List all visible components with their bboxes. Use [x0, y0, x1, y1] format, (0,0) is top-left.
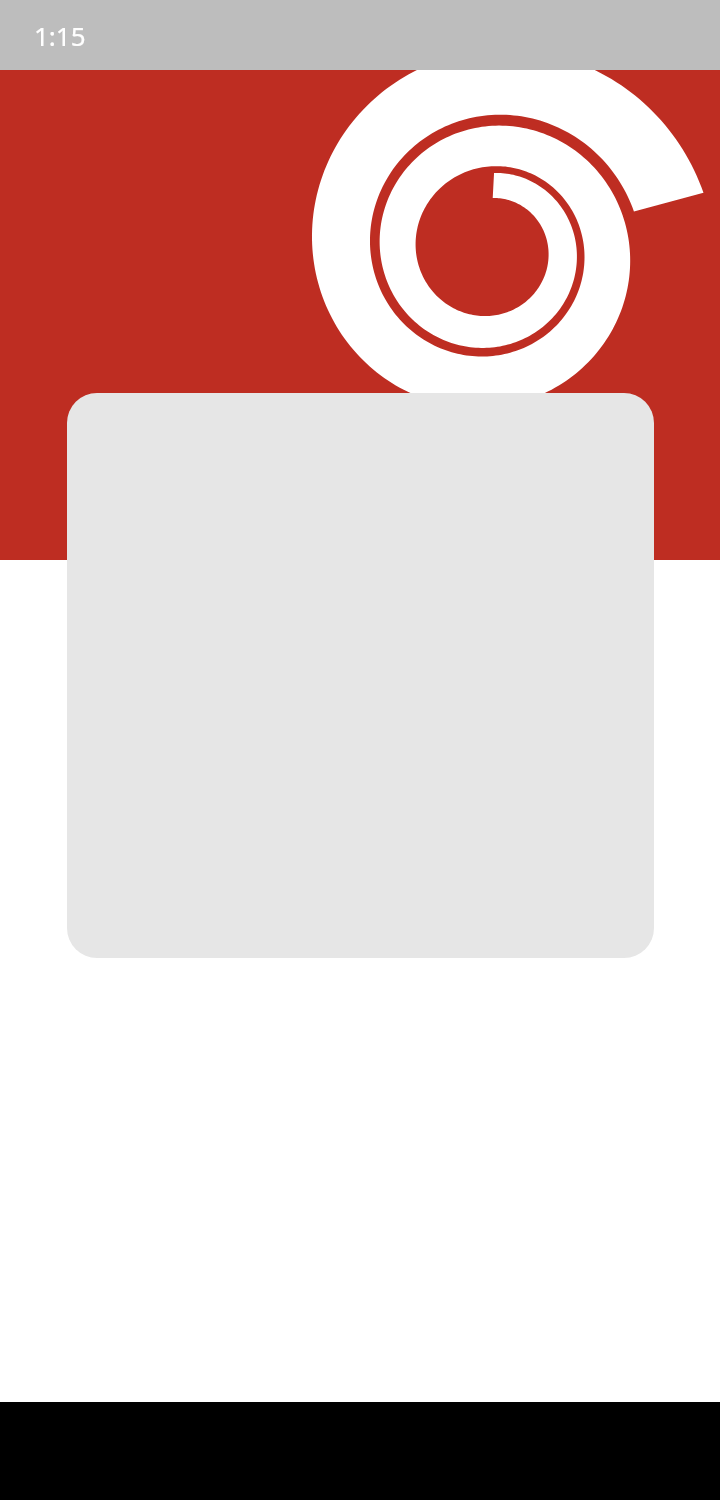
staticText: 1:15 — [34, 18, 86, 53]
